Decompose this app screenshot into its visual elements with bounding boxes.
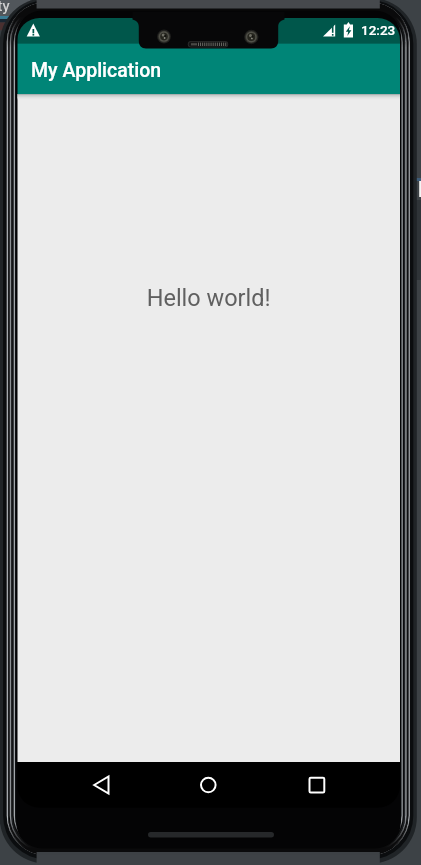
button[interactable]: My Application screen xyxy=(0,0,421,865)
